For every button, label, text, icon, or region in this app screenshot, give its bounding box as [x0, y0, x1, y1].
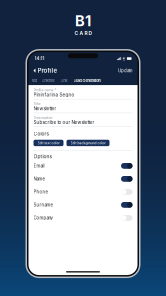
staticText: Options: [33, 154, 52, 159]
staticText: Edit background color: [70, 141, 105, 145]
staticText: Profile: [38, 67, 58, 74]
button[interactable]: Linktree: [38, 76, 57, 85]
staticText: Linktree: [41, 78, 54, 83]
button[interactable]: Lead Generation: [70, 76, 103, 85]
staticText: Email: [33, 163, 44, 168]
staticText: Pininfarina Segno: [33, 92, 74, 98]
staticText: Phone: [33, 189, 47, 194]
staticText: Lead Generation: [73, 78, 100, 83]
button[interactable]: Phone: [33, 185, 132, 198]
staticText: Colors: [33, 131, 49, 137]
button[interactable]: Edit text color: [33, 140, 63, 146]
button[interactable]: Update: [118, 68, 133, 73]
staticText: Edit text color: [37, 141, 59, 145]
staticText: Name: [33, 176, 44, 181]
button[interactable]: Email: [33, 159, 132, 172]
staticText: C A R D: [74, 30, 91, 36]
button[interactable]: Edit background color: [66, 140, 109, 146]
staticText: 14:11: [34, 56, 44, 61]
staticText: Newsletter: [33, 106, 56, 111]
staticText: Link: [60, 78, 67, 83]
staticText: Update: [118, 68, 133, 73]
staticText: B1: [75, 12, 91, 30]
button[interactable]: Link: [57, 76, 70, 85]
button[interactable]: Surname: [33, 198, 132, 211]
button[interactable]: Company: [33, 211, 132, 224]
staticText: Subscribe to our Newsletter: [33, 120, 94, 125]
staticText: ted: [32, 78, 37, 83]
staticText: Profile name *: [33, 88, 56, 92]
button[interactable]: Name: [33, 172, 132, 185]
staticText: Surname: [33, 202, 52, 207]
button[interactable]: Profile: [33, 67, 58, 74]
staticText: Title: [33, 102, 40, 106]
staticText: Company: [33, 215, 52, 220]
button[interactable]: ted: [30, 76, 38, 85]
staticText: Description: [33, 116, 52, 120]
